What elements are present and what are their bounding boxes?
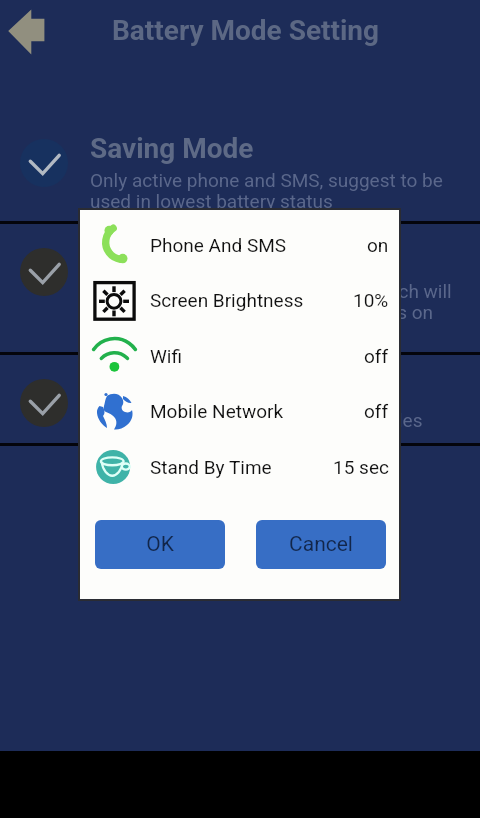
- button[interactable]: Stand By Time: [80, 439, 399, 495]
- staticText: OK: [146, 532, 174, 557]
- staticText: Screen Brightness: [150, 289, 304, 311]
- button[interactable]: Mobile Network: [80, 383, 399, 439]
- staticText: Only active phone and SMS, suggest to be…: [90, 169, 443, 212]
- staticText: Phone And SMS: [150, 234, 287, 256]
- staticText: Close all functions except phone which w…: [90, 280, 452, 323]
- button[interactable]: Saving Mode: [0, 113, 480, 203]
- button[interactable]: User Define: [0, 356, 480, 446]
- staticText: Saving Mode: [90, 132, 254, 165]
- staticText: You can define your own battery modes: [90, 409, 423, 431]
- staticText: off: [364, 345, 389, 367]
- staticText: Battery Mode Setting: [112, 14, 380, 47]
- staticText: Sleep Mode: [90, 243, 239, 276]
- staticText: 15 sec: [333, 456, 389, 478]
- staticText: on: [367, 234, 389, 256]
- button[interactable]: Cancel: [256, 520, 386, 569]
- staticText: User Define: [90, 375, 237, 408]
- button[interactable]: OK: [95, 520, 225, 569]
- button[interactable]: Sleep Mode: [0, 224, 480, 314]
- button[interactable]: Phone And SMS: [80, 217, 399, 273]
- staticText: off: [364, 400, 389, 422]
- staticText: Stand By Time: [150, 456, 272, 478]
- staticText: Mobile Network: [150, 400, 284, 422]
- button[interactable]: Wifi: [80, 328, 399, 384]
- staticText: Cancel: [289, 532, 353, 557]
- staticText: 10%: [353, 289, 389, 311]
- button[interactable]: Back: [0, 0, 56, 56]
- staticText: Wifi: [150, 345, 183, 367]
- button[interactable]: Screen Brightness: [80, 272, 399, 328]
